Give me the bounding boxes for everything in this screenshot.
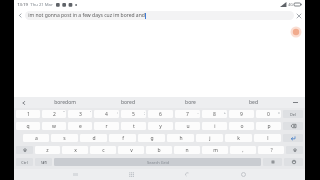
button[interactable]: c [90, 146, 116, 154]
button[interactable]: w [42, 122, 66, 130]
button[interactable]: z [35, 146, 60, 154]
staticText: 4 [105, 111, 108, 118]
staticText: x [74, 147, 77, 154]
staticText: " [63, 111, 65, 115]
staticText: y [159, 123, 162, 130]
staticText: = [278, 111, 280, 115]
staticText: + [224, 111, 226, 115]
button[interactable]: Home [215, 169, 271, 180]
staticText: 13:19 [17, 2, 28, 8]
button[interactable]: v [118, 146, 144, 154]
button[interactable]: 2 [42, 110, 66, 118]
staticText: w [52, 123, 56, 130]
staticText: m [213, 147, 218, 154]
button[interactable]: Del [283, 110, 303, 118]
button[interactable]: !#1 [35, 158, 52, 166]
button[interactable]: boredom [34, 97, 96, 108]
button[interactable]: bed [222, 97, 285, 108]
button[interactable]: r [94, 122, 119, 130]
button[interactable]: p [256, 122, 281, 130]
button[interactable]: 5 [121, 110, 146, 118]
button[interactable]: Back [16, 11, 25, 20]
staticText: 6 [159, 111, 162, 118]
staticText: a [35, 135, 38, 142]
staticText: s [63, 135, 66, 142]
button[interactable]: Backspace [283, 122, 303, 130]
button[interactable]: t [121, 122, 146, 130]
staticText: 8 [213, 111, 216, 118]
staticText: g [150, 135, 154, 142]
button[interactable]: im not gonna post in a few days cuz im b… [25, 11, 294, 20]
button[interactable]: 8 [202, 110, 227, 118]
button[interactable]: i [202, 122, 227, 130]
button[interactable]: 3 [68, 110, 92, 118]
button[interactable]: a [23, 134, 49, 142]
staticText: 3 [79, 111, 82, 118]
staticText: u [186, 123, 190, 130]
staticText: v [130, 147, 133, 154]
button[interactable]: Shift [16, 146, 33, 154]
button[interactable]: m [202, 146, 228, 154]
button[interactable]: 9 [229, 110, 254, 118]
staticText: bored [121, 99, 135, 106]
button[interactable]: Settings [263, 158, 282, 166]
staticText: Ctrl [21, 160, 28, 165]
staticText: 0 [267, 111, 270, 118]
button[interactable]: Shift [286, 146, 303, 154]
button[interactable]: n [174, 146, 200, 154]
staticText: bore [185, 99, 196, 106]
button[interactable]: b [146, 146, 172, 154]
button[interactable]: 1 [16, 110, 40, 118]
staticText: 9 [240, 111, 243, 118]
button[interactable]: Enter [283, 134, 303, 142]
button[interactable]: q [16, 122, 40, 130]
button[interactable]: y [148, 122, 173, 130]
staticText: f [122, 135, 124, 142]
button[interactable]: ? [258, 146, 284, 154]
button[interactable]: 4 [94, 110, 119, 118]
button[interactable]: Ctrl [16, 158, 33, 166]
button[interactable]: Apps [103, 169, 159, 180]
button[interactable]: bored [96, 97, 159, 108]
staticText: h [179, 135, 183, 142]
button[interactable]: o [229, 122, 254, 130]
button[interactable]: l [254, 134, 281, 142]
staticText: boredom [54, 99, 76, 106]
button[interactable]: Clear [294, 11, 303, 20]
staticText: 2 [53, 111, 56, 118]
staticText: ' [90, 111, 91, 115]
button[interactable]: g [138, 134, 165, 142]
button[interactable]: More options [285, 97, 305, 108]
button[interactable]: 6 [148, 110, 173, 118]
button[interactable]: k [225, 134, 252, 142]
staticText: e [79, 123, 82, 130]
staticText: 1 [27, 111, 30, 118]
staticText: c [102, 147, 105, 154]
staticText: t [133, 123, 135, 130]
button[interactable]: s [51, 134, 78, 142]
button[interactable]: 7 [175, 110, 200, 118]
staticText: d [92, 135, 96, 142]
staticText: r [105, 123, 108, 130]
button[interactable]: bore [159, 97, 222, 108]
staticText: Thu 21 Mar [30, 2, 53, 8]
button[interactable]: j [196, 134, 223, 142]
button[interactable]: Search Grid [54, 158, 261, 166]
button[interactable]: Previous suggestions [14, 97, 34, 108]
button[interactable]: x [62, 146, 88, 154]
staticText: bed [249, 99, 258, 106]
button[interactable]: h [167, 134, 194, 142]
button[interactable]: e [68, 122, 92, 130]
staticText: 4G [288, 2, 293, 7]
button[interactable]: 0 [256, 110, 281, 118]
button[interactable]: d [80, 134, 107, 142]
staticText: ; [144, 111, 145, 115]
button[interactable]: Emoji [284, 158, 303, 166]
button[interactable]: u [175, 122, 200, 130]
staticText: q [26, 123, 30, 130]
button[interactable]: f [109, 134, 136, 142]
staticText: : [117, 111, 118, 115]
button[interactable]: , [230, 146, 256, 154]
button[interactable]: Recents [47, 169, 103, 180]
